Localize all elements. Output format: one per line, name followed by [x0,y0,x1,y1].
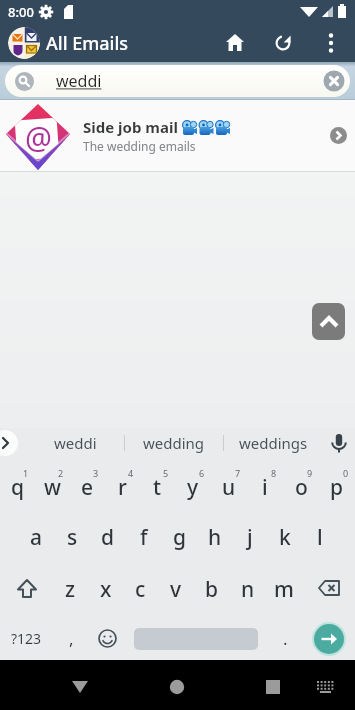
button[interactable] [322,69,346,93]
staticText: 3 [93,467,99,479]
staticText: j [247,523,253,552]
staticText: wedding [143,433,205,453]
button[interactable]: r [105,465,140,509]
staticText: q [11,473,25,502]
staticText: weddi [54,433,97,453]
staticText: 5 [163,467,169,479]
button[interactable]: c [123,567,158,611]
button[interactable]: q [0,465,35,509]
button[interactable] [211,24,259,62]
staticText: 8 [271,467,277,479]
staticText: ?123 [11,629,42,648]
button[interactable] [0,428,26,458]
staticText: s [67,523,78,552]
button[interactable]: w [35,465,70,509]
staticText: c [135,575,146,604]
staticText: p [330,473,344,502]
staticText: 2 [58,467,64,479]
staticText: g [173,523,187,552]
button[interactable]: d [90,515,126,559]
button[interactable]: z [53,567,88,611]
staticText: a [30,523,43,552]
button[interactable]: g [162,515,197,559]
staticText: d [101,523,115,552]
button[interactable]: m [266,567,302,611]
staticText: , [69,627,74,650]
staticText: 4 [128,467,134,479]
staticText: o [295,473,308,502]
button[interactable] [89,617,125,660]
button[interactable]: @ [0,100,355,172]
button[interactable]: weddi [26,428,124,458]
staticText: All Emails [46,31,129,56]
staticText: n [241,575,255,604]
staticText: m [274,575,294,604]
button[interactable]: y [175,465,211,509]
button[interactable]: a [18,515,54,559]
button[interactable]: ?123 [0,617,53,660]
button[interactable]: wedding [125,428,223,458]
button[interactable] [307,24,355,62]
button[interactable]: v [158,567,194,611]
staticText: x [100,575,112,604]
staticText: The wedding emails [83,138,196,154]
staticText: b [205,575,219,604]
staticText: 9 [307,467,313,479]
staticText: u [222,473,236,502]
button[interactable]: u [211,465,247,509]
button[interactable]: b [194,567,230,611]
button[interactable] [0,660,88,710]
button[interactable] [266,660,355,710]
button[interactable]: weddi [5,65,350,97]
button[interactable]: p [319,465,355,509]
staticText: l [317,523,323,552]
button[interactable]: t [140,465,175,509]
button[interactable]: k [267,515,302,559]
staticText: 0 [343,467,349,479]
staticText: k [279,523,291,552]
staticText: y [187,473,199,502]
button[interactable] [0,567,53,611]
button[interactable]: f [126,515,162,559]
staticText: 7 [235,467,241,479]
button[interactable] [303,617,355,660]
button[interactable]: l [302,515,337,559]
button[interactable]: s [54,515,90,559]
button[interactable]: e [70,465,105,509]
button[interactable]: , [53,617,89,660]
staticText: e [81,473,94,502]
staticText: weddings [239,433,308,453]
button[interactable]: j [232,515,267,559]
staticText: f [140,523,148,552]
staticText: weddi [56,70,102,92]
staticText: h [208,523,222,552]
button[interactable] [125,617,267,660]
button[interactable] [177,660,266,710]
staticText: 6 [199,467,205,479]
staticText: t [153,473,162,502]
button[interactable]: o [283,465,319,509]
button[interactable]: i [247,465,283,509]
staticText: r [118,473,127,502]
staticText: w [44,473,61,502]
button[interactable] [322,428,355,458]
staticText: . [283,627,288,650]
staticText: @ [25,117,52,158]
button[interactable]: x [88,567,123,611]
button[interactable] [259,24,307,62]
staticText: v [170,575,182,604]
button[interactable]: . [267,617,303,660]
button[interactable]: weddings [224,428,322,458]
staticText: 8:00 [8,3,34,21]
button[interactable] [302,567,355,611]
button[interactable] [88,660,177,710]
button[interactable] [312,303,345,340]
staticText: i [262,473,268,502]
staticText: z [65,575,76,604]
staticText: Side job mail [83,117,182,137]
staticText: 1 [23,467,29,479]
button[interactable]: h [197,515,232,559]
button[interactable]: n [230,567,266,611]
